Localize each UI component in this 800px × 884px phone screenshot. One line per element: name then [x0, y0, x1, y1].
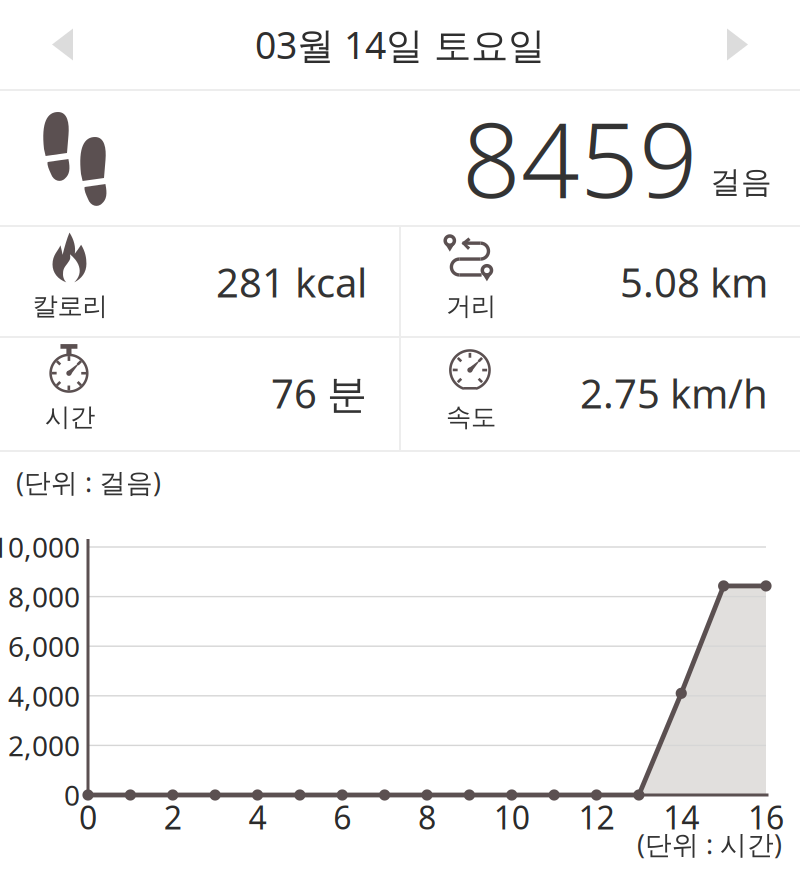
- staticText: 0: [64, 776, 80, 814]
- staticText: 8,000: [8, 578, 80, 615]
- staticText: 속도: [446, 401, 496, 432]
- staticText: 칼로리: [32, 290, 107, 321]
- staticText: 16: [748, 796, 784, 838]
- staticText: 6: [333, 796, 351, 838]
- button[interactable]: Previous day: [0, 0, 125, 89]
- staticText: 03월 14일 토요일: [255, 20, 545, 69]
- staticText: 시간: [45, 401, 95, 432]
- staticText: 76 분: [271, 366, 367, 419]
- button[interactable]: 속도: [401, 338, 800, 450]
- staticText: 281 kcal: [216, 255, 367, 308]
- staticText: 5.08 km: [620, 255, 768, 308]
- staticText: 2.75 km/h: [580, 366, 768, 419]
- staticText: 거리: [446, 290, 496, 321]
- staticText: 8: [418, 796, 436, 838]
- button[interactable]: 시간: [0, 338, 399, 450]
- staticText: 8459: [462, 90, 698, 226]
- button[interactable]: 거리: [401, 227, 800, 336]
- staticText: 6,000: [8, 628, 80, 665]
- staticText: 2: [164, 796, 182, 838]
- staticText: 걸음: [710, 163, 772, 201]
- staticText: 4,000: [8, 677, 80, 714]
- button[interactable]: Next day: [675, 0, 800, 89]
- staticText: 12: [578, 796, 614, 838]
- button[interactable]: 칼로리: [0, 227, 399, 336]
- staticText: (단위 : 걸음): [16, 464, 161, 500]
- staticText: 10,000: [0, 528, 80, 566]
- staticText: 14: [663, 796, 699, 838]
- staticText: 10: [494, 796, 530, 838]
- staticText: 2,000: [8, 727, 80, 764]
- button[interactable]: 8459: [0, 91, 800, 225]
- staticText: 0: [79, 796, 97, 838]
- staticText: 4: [248, 796, 266, 838]
- staticText: (단위 : 시간): [637, 826, 782, 862]
